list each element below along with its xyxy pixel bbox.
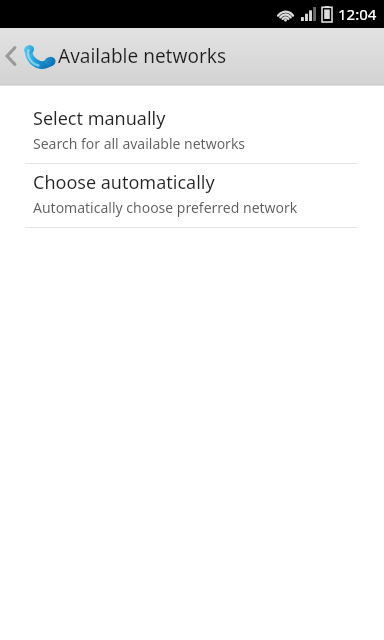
staticText: Automatically choose preferred network: [33, 198, 298, 217]
button[interactable]: Select manually: [0, 100, 384, 163]
staticText: Search for all available networks: [33, 134, 246, 153]
staticText: Choose automatically: [33, 170, 215, 195]
button[interactable]: Choose automatically: [0, 164, 384, 227]
staticText: Available networks: [58, 43, 226, 69]
button[interactable]: Navigate up: [0, 28, 64, 84]
staticText: 12:04: [338, 4, 377, 24]
staticText: Select manually: [33, 106, 166, 131]
